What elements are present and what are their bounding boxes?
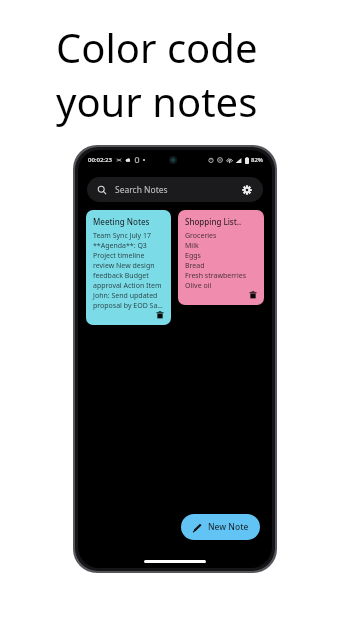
staticText: Meeting Notes (93, 216, 150, 227)
staticText: 82% (251, 156, 263, 164)
button[interactable]: Meeting Notes (86, 210, 171, 325)
staticText: Color code (56, 20, 258, 74)
button[interactable]: New Note (181, 514, 260, 540)
staticText: Groceries Milk Eggs Bread Fresh strawber… (185, 231, 258, 291)
staticText: Team Sync July 17 **Agenda**: Q3 Project… (93, 231, 165, 311)
staticText: 00:02:23 (88, 156, 112, 164)
staticText: Shopping List.. (185, 216, 242, 227)
button[interactable]: Delete note (153, 308, 166, 321)
staticText: Search Notes (115, 184, 168, 196)
button[interactable]: Search Notes (87, 177, 263, 202)
staticText: your notes (56, 74, 258, 128)
staticText: New Note (208, 521, 249, 533)
button[interactable]: Delete note (246, 288, 259, 301)
button[interactable]: Shopping List.. (178, 210, 264, 305)
button[interactable]: Settings (239, 182, 255, 198)
